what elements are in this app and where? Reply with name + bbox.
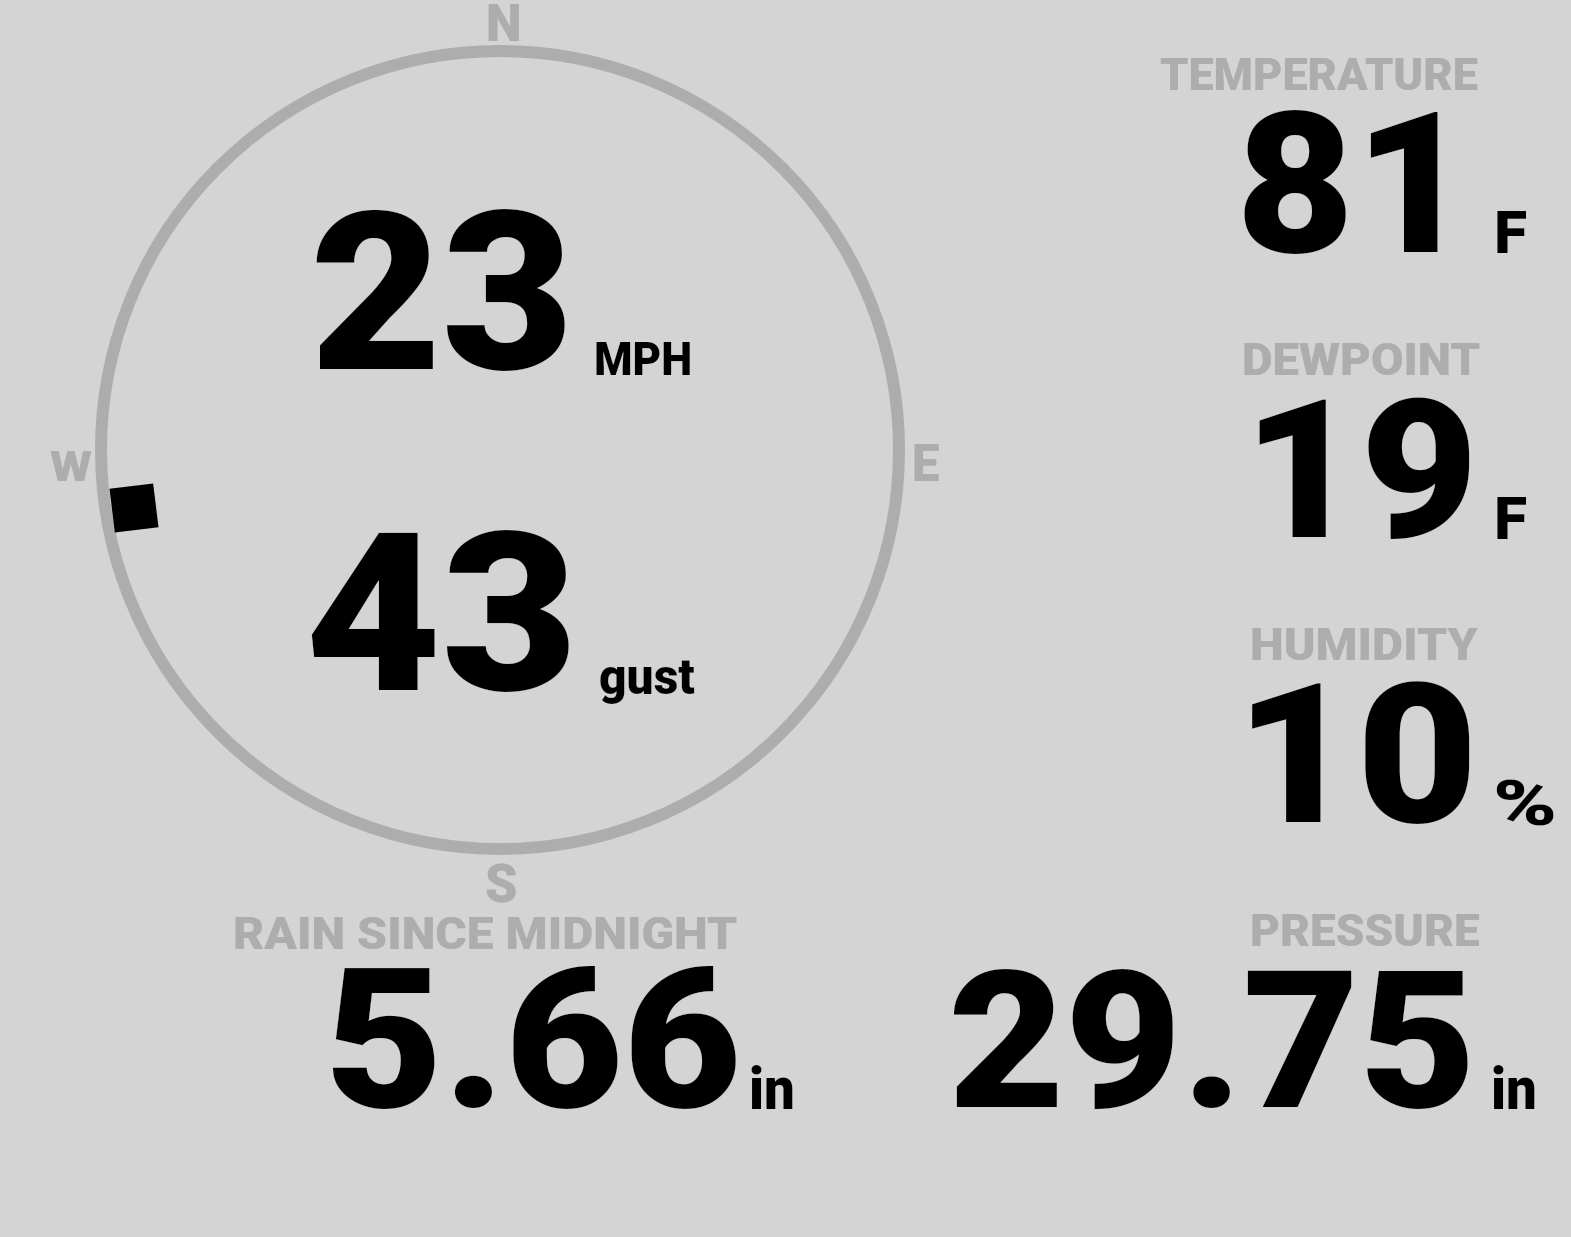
staticText: 19 — [1243, 358, 1478, 584]
other: Wind direction west — [109, 483, 158, 532]
staticText: E — [912, 433, 940, 494]
staticText: S — [485, 852, 518, 915]
staticText: TEMPERATURE — [1160, 49, 1478, 100]
staticText: 81 — [1236, 70, 1474, 300]
staticText: MPH — [594, 332, 693, 386]
staticText: in — [749, 1055, 796, 1124]
staticText: F — [1494, 485, 1527, 553]
button[interactable]: Rain since midnight 5.66 inches — [220, 895, 820, 1125]
staticText: gust — [599, 648, 695, 707]
staticText: 10 — [1235, 642, 1478, 870]
button[interactable]: Wind gust 43 miles per hour — [240, 500, 720, 730]
staticText: % — [1493, 767, 1557, 841]
button[interactable]: Humidity 10 percent — [1120, 610, 1565, 840]
button[interactable]: Temperature 81 degrees Fahrenheit — [1120, 40, 1560, 270]
staticText: 43 — [305, 485, 578, 743]
button[interactable]: Pressure 29.75 inches — [900, 895, 1560, 1125]
staticText: F — [1494, 199, 1527, 267]
staticText: 29.75 — [948, 929, 1476, 1154]
staticText: in — [1491, 1055, 1538, 1124]
staticText: PRESSURE — [1250, 904, 1480, 957]
button[interactable]: Wind speed 23 miles per hour — [240, 170, 720, 420]
staticText: 5.66 — [325, 927, 742, 1155]
staticText: W — [50, 442, 92, 492]
staticText: RAIN SINCE MIDNIGHT — [233, 908, 738, 959]
staticText: 23 — [310, 165, 574, 423]
button[interactable]: Dew point 19 degrees Fahrenheit — [1120, 325, 1560, 555]
staticText: DEWPOINT — [1242, 333, 1480, 386]
staticText: HUMIDITY — [1250, 619, 1479, 670]
staticText: N — [486, 0, 522, 54]
